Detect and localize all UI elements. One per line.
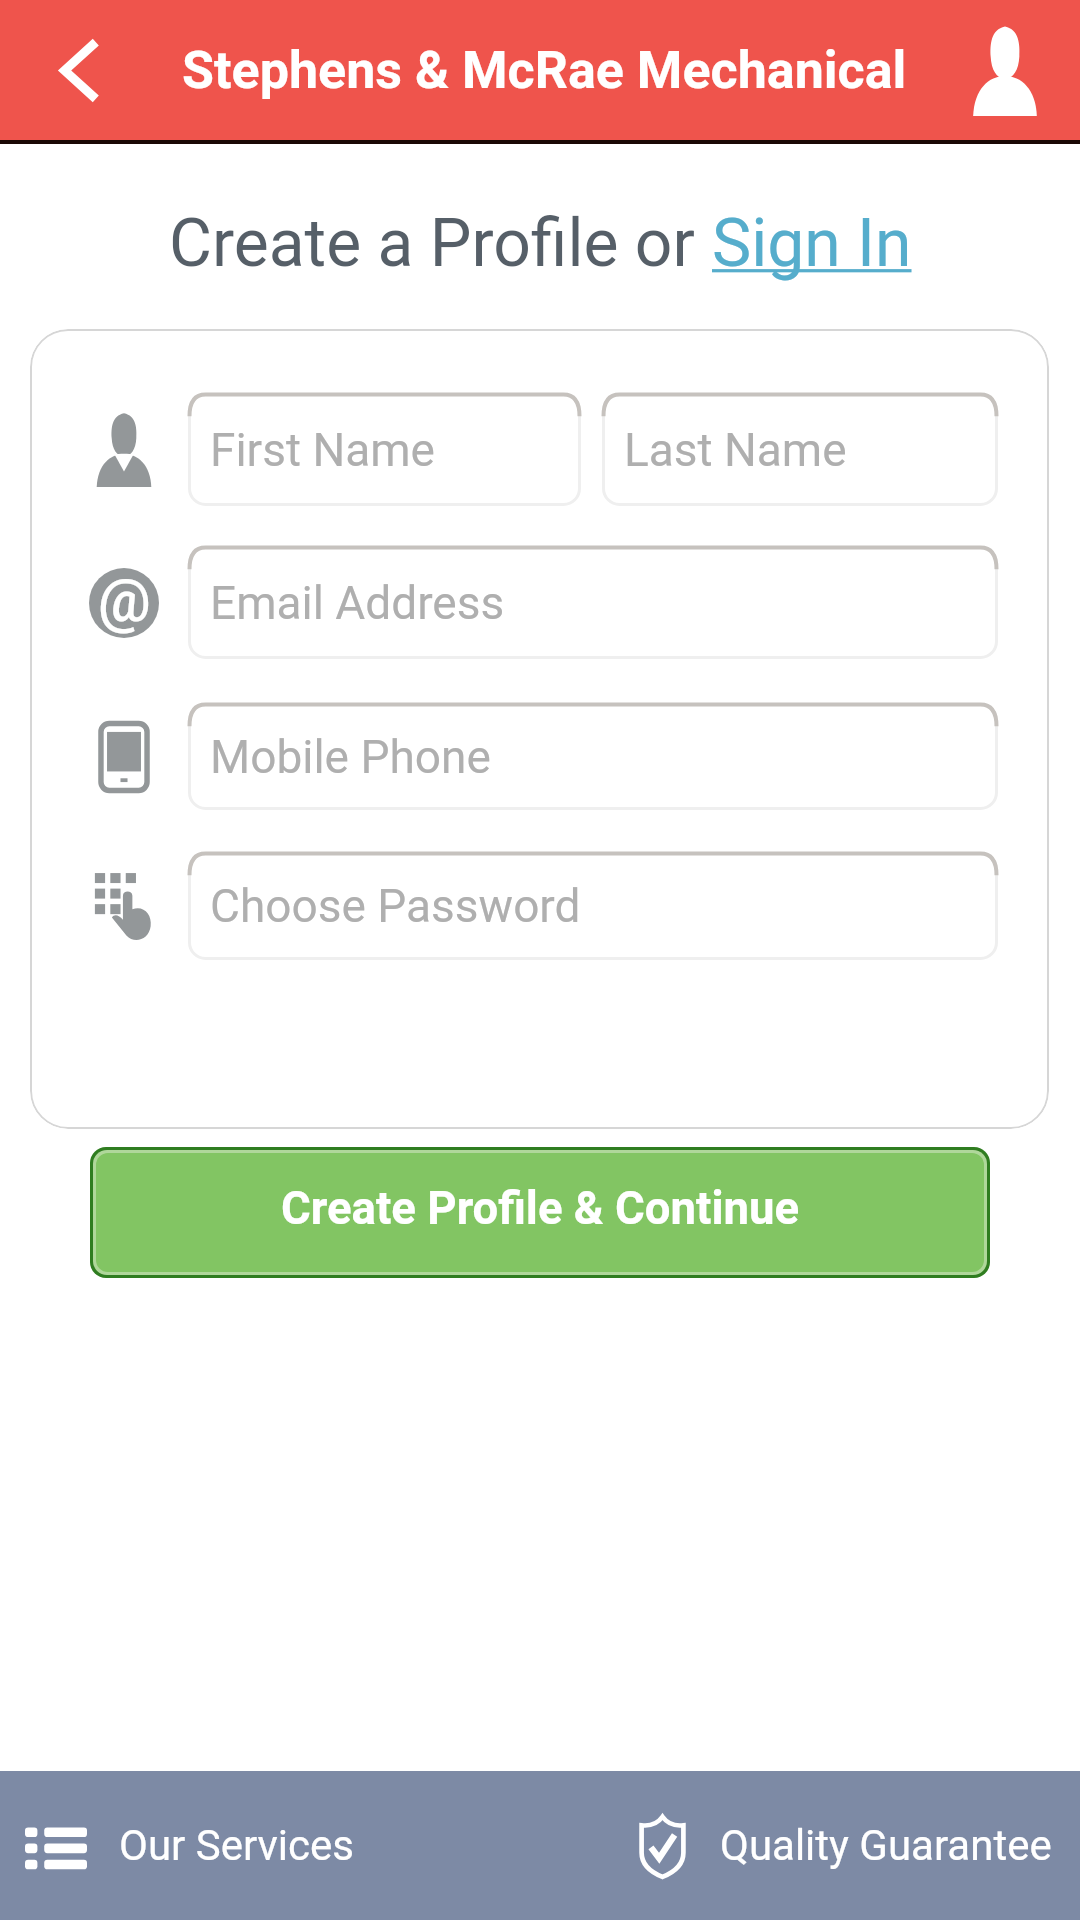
button[interactable]: Last Name (602, 393, 998, 506)
staticText: Stephens & McRae Mechanical (182, 40, 907, 101)
staticText: Mobile Phone (210, 730, 491, 784)
button[interactable]: Our Services (0, 1771, 540, 1920)
staticText: Create Profile & Continue (281, 1182, 800, 1235)
button[interactable]: Email Address (188, 546, 998, 659)
button[interactable]: Sign In (712, 205, 912, 282)
button[interactable]: Back (0, 0, 150, 140)
button[interactable]: Quality Guarantee (540, 1771, 1080, 1920)
button[interactable]: First Name (188, 393, 581, 506)
staticText: Sign In (712, 205, 912, 282)
staticText: Choose Password (210, 879, 581, 933)
staticText: Email Address (210, 576, 505, 630)
button[interactable]: Mobile Phone (188, 703, 998, 810)
staticText: First Name (210, 423, 435, 477)
staticText: Quality Guarantee (720, 1821, 1052, 1870)
button[interactable]: Choose Password (188, 852, 998, 960)
staticText: Create a Profile or (169, 205, 712, 282)
staticText: Last Name (624, 423, 847, 477)
button[interactable]: Create Profile & Continue (96, 1153, 984, 1272)
button[interactable]: Profile (940, 0, 1080, 140)
staticText: @ (98, 568, 151, 635)
staticText: Our Services (119, 1821, 354, 1870)
